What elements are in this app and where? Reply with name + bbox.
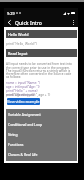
staticText: print("Age next year:", age + 1) [6, 93, 51, 97]
button[interactable]: More options [68, 17, 78, 27]
staticText: Hello World [8, 32, 29, 37]
staticText: print("Hello, World!") [6, 42, 37, 46]
staticText: 9:29 [7, 11, 15, 16]
staticText: age = int(input("Age: ")) [6, 85, 40, 89]
staticText: Variable Assignment [8, 112, 41, 117]
button[interactable]: Functions [6, 139, 77, 149]
button[interactable]: View video example [7, 98, 40, 105]
button[interactable]: Variable Assignment [6, 109, 77, 119]
staticText: All input needs to be converted from tex… [6, 62, 74, 78]
staticText: View video example [7, 99, 40, 104]
staticText: Functions [8, 142, 24, 147]
staticText: mark = float(input()) [6, 93, 35, 97]
staticText: Conditional and Loop [8, 122, 43, 127]
staticText: Read Input [8, 51, 28, 56]
button[interactable]: String [6, 129, 77, 139]
button[interactable]: Classes & Real Life [6, 149, 77, 159]
staticText: print("Hello " + name) [6, 89, 38, 93]
button[interactable]: Back [4, 17, 14, 27]
staticText: String [8, 132, 18, 137]
staticText: name = input("Name: ") [6, 81, 41, 85]
staticText: Quick Intro [15, 20, 42, 27]
button[interactable]: Conditional and Loop [6, 119, 77, 129]
staticText: Classes & Real Life [8, 152, 38, 157]
